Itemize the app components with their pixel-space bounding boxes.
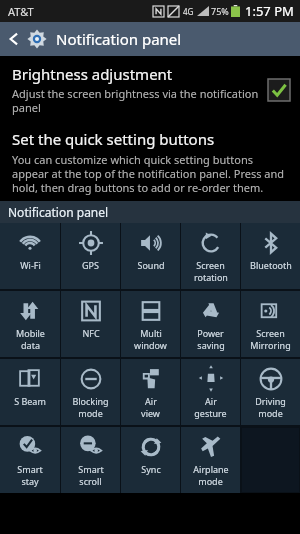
staticText: mode [78,407,103,419]
button[interactable]: Air [121,359,180,425]
staticText: 4G [183,6,194,17]
staticText: gesture [194,407,227,419]
staticText: saving [197,339,225,351]
button[interactable]: Wi-Fi [0,223,60,289]
staticText: Screen [196,259,225,271]
staticText: Notification panel [56,29,182,49]
staticText: Blocking [72,395,109,407]
staticText: Smart [78,463,104,475]
staticText: Driving [255,395,286,407]
button[interactable]: Smart [0,427,60,493]
staticText: You can customize which quick setting bu… [12,152,288,195]
staticText: S Beam [14,395,46,407]
staticText: Screen [256,327,285,339]
staticText: Sound [137,259,165,271]
button[interactable]: NFC [61,291,120,357]
button[interactable]: Screen [181,223,240,289]
button[interactable]: Back to Notification panel [0,22,300,56]
button[interactable]: S Beam [0,359,60,425]
button[interactable]: Brightness adjustment [0,56,300,123]
button[interactable]: Power [181,291,240,357]
staticText: data [21,339,40,351]
staticText: rotation [194,271,228,283]
staticText: Smart [17,463,43,475]
staticText: scroll [79,475,102,487]
button[interactable]: Smart [61,427,120,493]
staticText: Bluetooth [250,259,292,271]
staticText: Sync [141,463,161,475]
staticText: Mirroring [250,339,291,351]
button[interactable]: Multi [121,291,180,357]
staticText: window [134,339,167,351]
button[interactable]: Blocking [61,359,120,425]
staticText: stay [21,475,39,487]
staticText: AT&T [8,4,34,19]
staticText: Notification panel [8,204,109,220]
staticText: Adjust the screen brightness via the not… [12,86,260,115]
staticText: Wi-Fi [20,259,41,271]
button[interactable]: Driving [241,359,300,425]
staticText: mode [198,475,223,487]
staticText: GPS [82,259,99,271]
staticText: Mobile [16,327,45,339]
staticText: NFC [82,327,100,339]
button[interactable]: GPS [61,223,120,289]
staticText: 75% [211,5,229,17]
button[interactable]: Sound [121,223,180,289]
staticText: Multi [140,327,162,339]
staticText: Air [205,395,217,407]
staticText: Airplane [193,463,229,475]
staticText: Brightness adjustment [12,64,173,84]
staticText: Set the quick setting buttons [12,129,215,149]
staticText: view [141,407,160,419]
staticText: 1:57 PM [245,2,294,20]
staticText: mode [258,407,283,419]
button[interactable]: Mobile [0,291,60,357]
staticText: Air [145,395,157,407]
button[interactable]: Bluetooth [241,223,300,289]
button[interactable]: Airplane [181,427,240,493]
button[interactable]: Sync [121,427,180,493]
button[interactable]: Air [181,359,240,425]
button[interactable]: Screen [241,291,300,357]
staticText: Power [197,327,224,339]
